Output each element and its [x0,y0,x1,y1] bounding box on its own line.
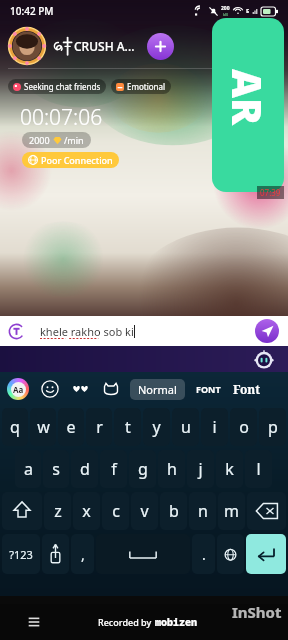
button[interactable]: Backspace [247,492,286,530]
button[interactable]: Share [42,534,69,574]
staticText: Seeking chat friends [24,81,101,92]
staticText: o [239,416,249,438]
staticText: x [82,500,91,522]
staticText: Poor Connection [41,154,113,166]
staticText: z [54,500,62,522]
staticText: c [112,500,120,522]
button[interactable]: l [245,450,272,488]
button[interactable]: Emotional [111,79,171,94]
button[interactable]: b [160,492,187,530]
staticText: e [66,416,76,438]
button[interactable]: Seeking chat friends [8,79,106,94]
button[interactable]: Share [212,18,284,192]
button[interactable]: z [44,492,71,530]
staticText: t [125,416,131,438]
staticText: p [268,416,278,438]
staticText: E [246,7,250,15]
button[interactable]: t [114,408,141,446]
staticText: j [198,458,203,480]
staticText: m [224,500,239,522]
staticText: i [212,416,217,438]
button[interactable]: h [158,450,185,488]
button[interactable]: , [71,534,94,574]
staticText: s [52,458,60,480]
staticText: 07:39 [260,187,281,198]
button[interactable]: Font [232,380,262,398]
staticText: CRUSH A... [74,38,135,54]
button[interactable]: s [43,450,69,488]
staticText: v [140,500,149,522]
button[interactable]: khele rakho sob ki [0,316,288,346]
button[interactable]: r [86,408,112,446]
staticText: h [167,458,177,480]
button[interactable]: Menu [20,608,48,636]
button[interactable]: Shift [2,492,42,530]
staticText: q [10,416,20,438]
staticText: 10:42 PM [10,4,54,18]
button[interactable]: n [189,492,216,530]
button[interactable]: Send [255,319,279,343]
staticText: k [225,458,234,480]
staticText: f [111,458,117,480]
button[interactable]: m [218,492,245,530]
staticText: 2000 [29,134,50,146]
button[interactable]: . [192,534,215,574]
button[interactable]: Space [96,534,190,574]
staticText: u [181,416,191,438]
button[interactable]: g [129,450,156,488]
button[interactable]: FONT [195,382,222,396]
button[interactable]: j [187,450,214,488]
button[interactable]: d [71,450,98,488]
button[interactable]: o [230,408,257,446]
button[interactable]: i [201,408,228,446]
staticText: Normal [138,382,177,397]
staticText: Aa [13,384,24,395]
button[interactable]: v [131,492,158,530]
button[interactable]: Assistant [254,349,274,369]
button[interactable]: Emoji [41,380,59,398]
staticText: kB [223,12,228,17]
button[interactable]: GIF [102,380,120,398]
button[interactable]: u [172,408,199,446]
staticText: SHARE [212,69,284,141]
staticText: a [24,458,33,480]
staticText: l [256,458,261,480]
staticText: ?123 [9,547,33,562]
button[interactable]: k [216,450,243,488]
button[interactable]: p [259,408,286,446]
staticText: 00:07:06 [20,103,103,132]
staticText: Recorded by [98,616,152,628]
button[interactable]: ?123 [2,534,40,574]
staticText: . [202,545,206,564]
staticText: Emotional [127,81,166,92]
button[interactable]: c [102,492,129,530]
button[interactable]: e [58,408,84,446]
button[interactable]: Enter [246,534,286,574]
staticText: mobizen [155,615,197,629]
staticText: khele rakho sob ki [40,324,134,339]
button[interactable]: Add [147,33,174,60]
staticText: y [152,416,161,438]
staticText: InShot [232,602,282,622]
staticText: /min [64,134,84,146]
button[interactable]: Poor Connection [22,152,119,168]
button[interactable]: 2000 [22,132,91,148]
button[interactable]: y [143,408,170,446]
button[interactable]: Language [217,534,244,574]
button[interactable]: Normal [130,379,185,400]
staticText: FONT [196,383,221,395]
button[interactable]: Profile [8,27,46,65]
button[interactable]: a [15,450,41,488]
button[interactable]: x [73,492,100,530]
button[interactable]: Text style [7,378,29,400]
staticText: 200 [221,5,230,12]
staticText: b [169,500,179,522]
staticText: , [81,545,85,564]
button[interactable]: f [100,450,127,488]
staticText: r [96,416,103,438]
button[interactable]: q [2,408,28,446]
staticText: g [138,458,148,480]
button[interactable]: Stickers [71,380,90,399]
staticText: d [80,458,90,480]
button[interactable]: w [30,408,56,446]
